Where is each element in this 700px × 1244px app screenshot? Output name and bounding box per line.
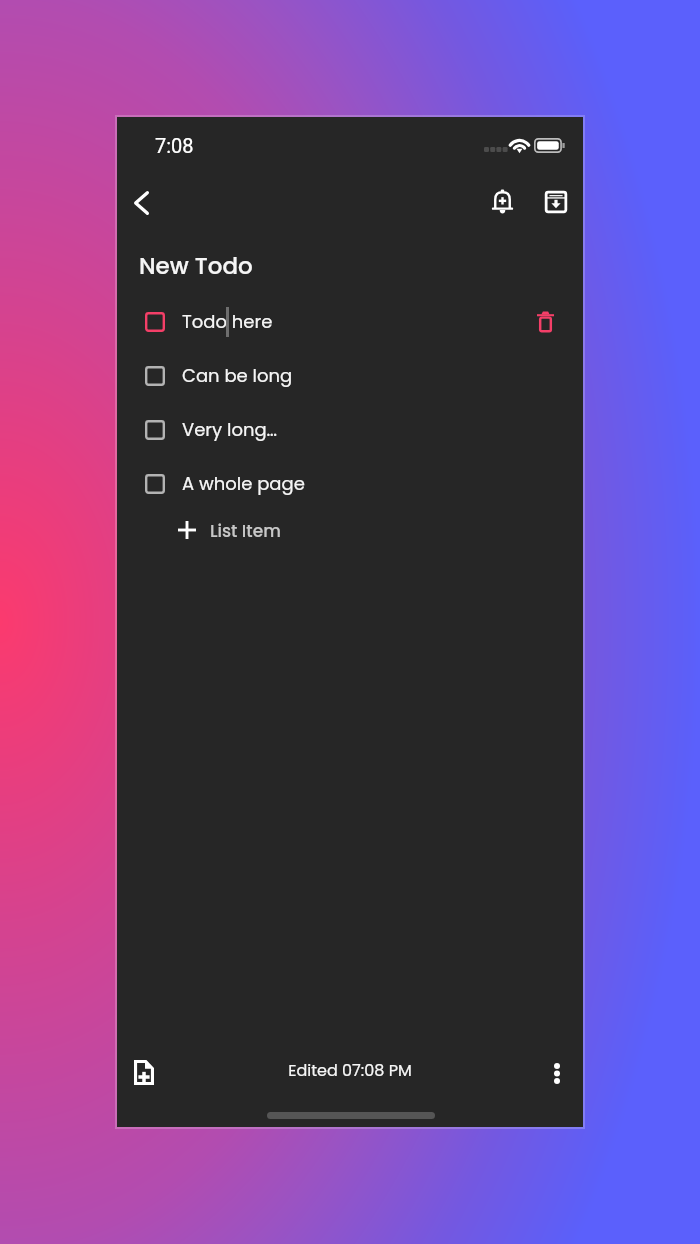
button[interactable]: Very long… bbox=[117, 408, 583, 452]
button[interactable]: Todo here bbox=[117, 300, 583, 344]
button[interactable]: Can be long bbox=[117, 354, 583, 398]
button[interactable]: Delete bbox=[523, 300, 567, 344]
button[interactable]: Back bbox=[115, 177, 167, 229]
staticText: Edited 07:08 PM bbox=[288, 1059, 412, 1081]
staticText: New Todo bbox=[139, 250, 253, 282]
staticText: Can be long bbox=[182, 363, 293, 388]
staticText: A whole page bbox=[182, 471, 305, 496]
staticText: Very long… bbox=[182, 417, 278, 442]
staticText: List Item bbox=[210, 519, 281, 543]
staticText: 7:08 bbox=[155, 134, 194, 157]
button[interactable]: List Item bbox=[117, 508, 583, 552]
button[interactable]: More options bbox=[534, 1050, 580, 1096]
button[interactable]: A whole page bbox=[117, 462, 583, 506]
button[interactable]: Archive bbox=[532, 178, 580, 226]
button[interactable]: Add reminder bbox=[478, 177, 526, 225]
staticText: Todo here bbox=[182, 309, 273, 334]
button[interactable]: New note bbox=[121, 1049, 167, 1095]
